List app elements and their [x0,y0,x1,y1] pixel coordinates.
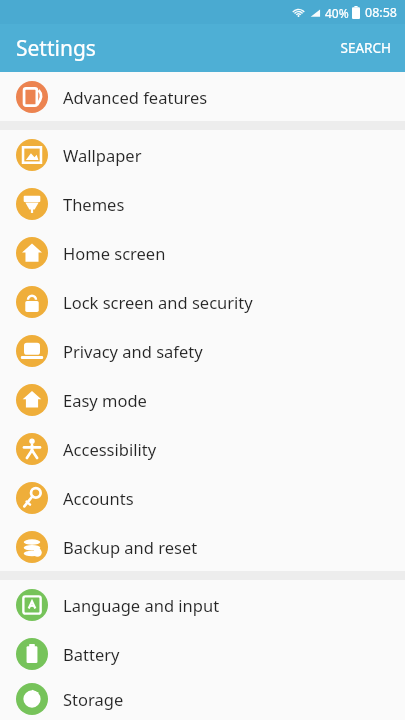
button[interactable]: Storage [0,678,405,720]
staticText: 08:58 [365,4,397,21]
staticText: Backup and reset [63,536,198,558]
staticText: SEARCH [340,39,391,57]
staticText: 40% [325,5,349,21]
staticText: Themes [63,193,125,215]
button[interactable]: Accounts [0,473,405,522]
button[interactable]: Advanced features [0,72,405,121]
button[interactable]: Accessibility [0,424,405,473]
button[interactable]: Privacy and safety [0,326,405,375]
button[interactable]: SEARCH [326,29,405,67]
staticText: Settings [16,34,96,63]
staticText: Privacy and safety [63,340,203,362]
staticText: Accounts [63,487,134,509]
staticText: Home screen [63,242,166,264]
staticText: Lock screen and security [63,291,253,313]
staticText: Advanced features [63,86,208,108]
staticText: Battery [63,643,120,665]
button[interactable]: Wallpaper [0,130,405,179]
button[interactable]: Themes [0,179,405,228]
button[interactable]: Backup and reset [0,522,405,571]
button[interactable]: Lock screen and security [0,277,405,326]
staticText: Language and input [63,594,220,616]
staticText: Accessibility [63,438,157,460]
staticText: Wallpaper [63,144,142,166]
staticText: Storage [63,688,124,710]
button[interactable]: Home screen [0,228,405,277]
button[interactable]: Easy mode [0,375,405,424]
button[interactable]: Battery [0,629,405,678]
button[interactable]: Language and input [0,580,405,629]
staticText: Easy mode [63,389,147,411]
